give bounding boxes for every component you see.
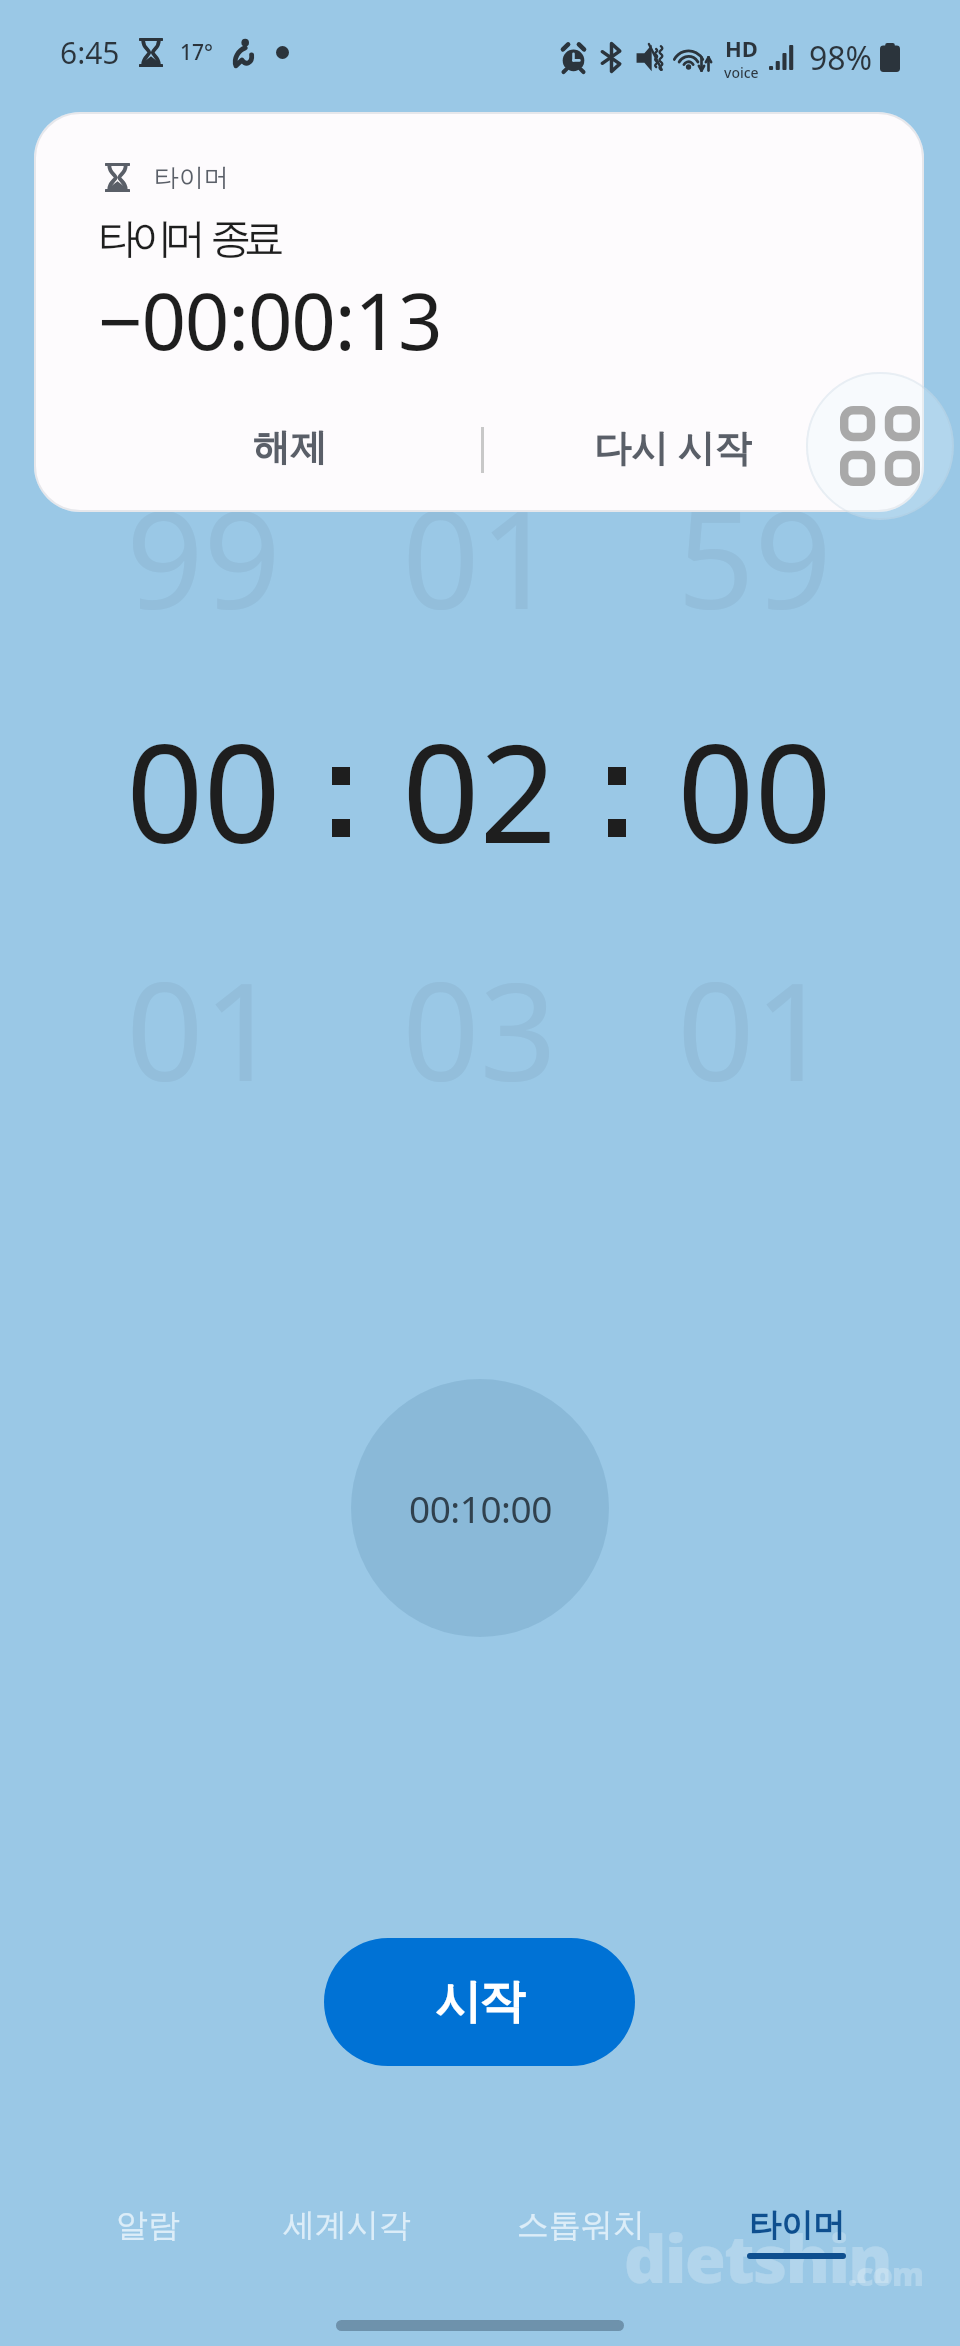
button[interactable]: 00 bbox=[73, 696, 333, 886]
staticText: 01 bbox=[126, 937, 281, 1121]
staticText: 17° bbox=[180, 38, 213, 67]
button[interactable]: 02 bbox=[349, 696, 609, 886]
staticText: −00:00:13 bbox=[98, 267, 442, 373]
staticText: 03 bbox=[402, 937, 557, 1121]
staticText: dietshin bbox=[624, 2212, 892, 2302]
button[interactable]: 해제 bbox=[81, 397, 499, 497]
staticText: 01 bbox=[677, 937, 832, 1121]
staticText: 02 bbox=[402, 699, 557, 883]
staticText: HD bbox=[725, 33, 758, 63]
button[interactable]: 59 bbox=[624, 462, 884, 652]
button[interactable]: 01 bbox=[349, 462, 609, 652]
staticText: .com bbox=[848, 2252, 923, 2296]
staticText: 종료 bbox=[214, 213, 281, 265]
button[interactable]: 스톱워치 bbox=[466, 2205, 696, 2295]
staticText: 타이머 bbox=[749, 2205, 845, 2245]
staticText: 00 bbox=[126, 699, 281, 883]
button[interactable]: 타이머 bbox=[681, 2205, 911, 2295]
staticText: 00:10:00 bbox=[409, 1483, 552, 1533]
staticText: 01 bbox=[402, 465, 557, 649]
button[interactable]: 다시 시작 bbox=[467, 396, 879, 496]
staticText: 59 bbox=[677, 465, 832, 649]
button[interactable]: 00 bbox=[624, 696, 884, 886]
staticText: voice bbox=[724, 63, 759, 82]
staticText: 00 bbox=[677, 699, 832, 883]
staticText: 타이머 bbox=[154, 162, 229, 193]
staticText: 99 bbox=[126, 465, 281, 649]
staticText: 6:45 bbox=[60, 32, 120, 73]
staticText: 해제 bbox=[253, 424, 327, 471]
staticText: 타이머 bbox=[98, 213, 199, 265]
staticText: 시작 bbox=[436, 1973, 524, 2031]
button[interactable]: 세계시각 bbox=[232, 2205, 462, 2295]
staticText: 98% bbox=[809, 36, 873, 80]
staticText: 알람 bbox=[116, 2205, 180, 2245]
staticText: 세계시각 bbox=[283, 2205, 411, 2245]
button[interactable]: 99 bbox=[73, 462, 333, 652]
staticText: 다시 시작 bbox=[594, 421, 752, 472]
button[interactable]: 00:10:00 bbox=[351, 1379, 609, 1637]
button[interactable]: 03 bbox=[349, 934, 609, 1124]
button[interactable]: Multi window bbox=[806, 372, 954, 520]
staticText: 스톱워치 bbox=[517, 2205, 645, 2245]
button[interactable]: 시작 bbox=[324, 1938, 635, 2066]
button[interactable]: 알람 bbox=[33, 2205, 263, 2295]
